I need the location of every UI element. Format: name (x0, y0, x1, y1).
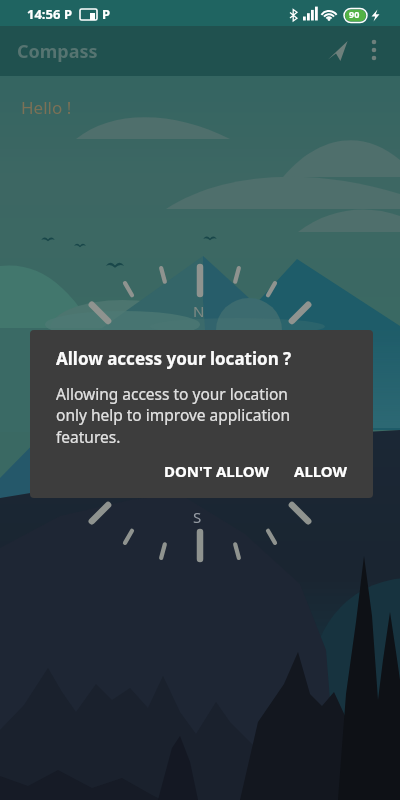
staticText: Compass (17, 39, 98, 64)
staticText: Hello ! (21, 96, 72, 119)
staticText: N (193, 301, 205, 321)
staticText: 90 (349, 8, 360, 20)
button[interactable] (360, 37, 388, 65)
button[interactable] (320, 33, 356, 69)
button[interactable]: ALLOW (286, 453, 356, 489)
staticText: 14:56 (27, 5, 61, 23)
staticText: ALLOW (294, 461, 348, 481)
staticText: DON'T ALLOW (164, 461, 269, 481)
staticText: Allowing access to your location only he… (56, 383, 291, 447)
staticText: P (64, 5, 73, 23)
staticText: S (193, 507, 202, 527)
staticText: P (102, 5, 111, 23)
button[interactable]: DON'T ALLOW (156, 453, 277, 489)
staticText: Allow access your location ? (56, 347, 292, 370)
